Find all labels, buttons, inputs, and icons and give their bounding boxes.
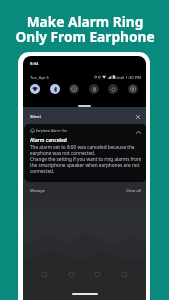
button[interactable]: Wi-Fi bbox=[30, 84, 40, 94]
staticText: Make Alarm Ring Only From Earphone bbox=[15, 12, 155, 46]
button[interactable]: App 2 bbox=[67, 270, 76, 279]
button[interactable]: Collapse notification bbox=[134, 128, 142, 136]
button[interactable]: Do not disturb bbox=[69, 84, 79, 94]
button[interactable]: Earphone Alarm • 6m bbox=[24, 124, 146, 182]
staticText: Earphone Alarm • 6m bbox=[36, 129, 67, 133]
staticText: Alarm canceled bbox=[30, 137, 67, 144]
button[interactable]: Flashlight bbox=[128, 84, 138, 94]
button[interactable]: App 4 bbox=[120, 270, 129, 279]
button[interactable]: App 1 bbox=[40, 270, 49, 279]
staticText: 8:04 bbox=[30, 60, 39, 66]
button[interactable]: Clear all bbox=[126, 188, 141, 193]
button[interactable]: Clear silent notifications bbox=[133, 112, 142, 121]
button[interactable]: Battery saver bbox=[89, 84, 99, 94]
button[interactable]: Bluetooth bbox=[50, 84, 60, 94]
button[interactable]: Auto-rotate bbox=[108, 84, 118, 94]
button[interactable]: Manage bbox=[30, 188, 45, 193]
staticText: Tue, Apr 6 bbox=[30, 75, 49, 80]
staticText: Manage bbox=[30, 188, 45, 193]
staticText: Until 1:30 PM bbox=[115, 75, 142, 81]
staticText: Clear all bbox=[126, 188, 141, 193]
button[interactable]: App 3 bbox=[93, 270, 102, 279]
staticText: The alarm set to 8:00 was canceled becau… bbox=[30, 144, 142, 174]
staticText: Silent bbox=[30, 114, 41, 120]
